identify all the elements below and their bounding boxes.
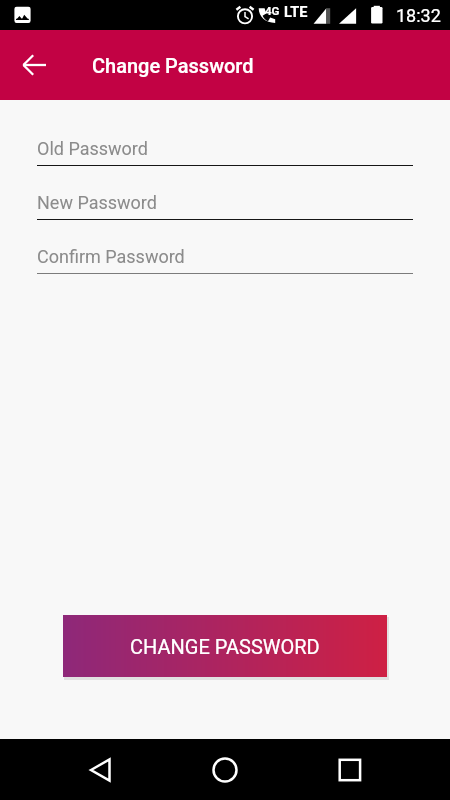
button[interactable]: Navigate back: [11, 41, 59, 89]
staticText: Old Password: [37, 138, 148, 159]
staticText: Confirm Password: [37, 246, 185, 267]
button[interactable]: CHANGE PASSWORD: [63, 615, 387, 677]
button[interactable]: Old Password: [0, 112, 450, 166]
button[interactable]: New Password: [0, 166, 450, 220]
staticText: Change Password: [92, 54, 254, 77]
staticText: CHANGE PASSWORD: [130, 635, 320, 658]
button[interactable]: Confirm Password: [0, 220, 450, 274]
staticText: LTE: [284, 4, 308, 21]
button[interactable]: Recent apps: [324, 744, 376, 796]
staticText: 18:32: [396, 5, 441, 26]
button[interactable]: Home: [199, 744, 251, 796]
button[interactable]: Back: [76, 744, 128, 796]
staticText: 4G: [265, 4, 280, 17]
staticText: New Password: [37, 192, 157, 213]
